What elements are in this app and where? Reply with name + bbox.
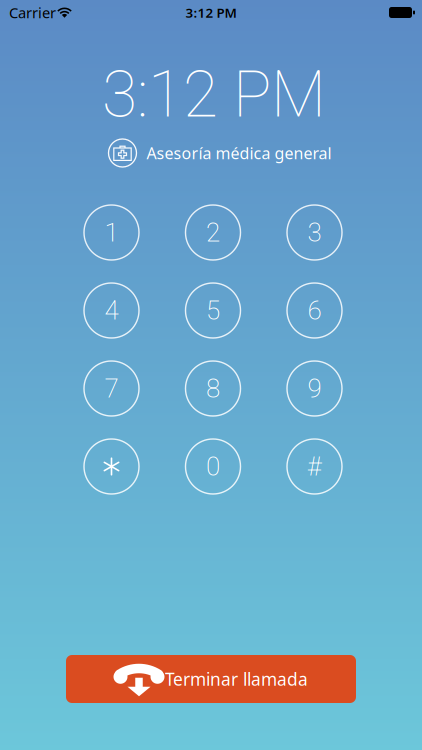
staticText: Carrier	[9, 3, 56, 22]
staticText: 3:12 PM	[185, 4, 236, 21]
button[interactable]: 0	[185, 439, 240, 494]
button[interactable]: 3	[287, 205, 342, 260]
staticText: #	[307, 451, 322, 482]
staticText: 3	[307, 217, 321, 248]
button[interactable]: 5	[185, 283, 240, 338]
staticText: 8	[206, 373, 220, 404]
button[interactable]: 2	[185, 205, 240, 260]
button[interactable]: 6	[287, 283, 342, 338]
staticText: 9	[307, 373, 321, 404]
staticText: 4	[104, 295, 118, 326]
button[interactable]: 4	[84, 283, 139, 338]
button[interactable]: 7	[84, 361, 139, 416]
staticText: 2	[206, 217, 220, 248]
button[interactable]: Pound	[287, 439, 342, 494]
staticText: 6	[307, 295, 321, 326]
button[interactable]: Asterisk	[84, 439, 139, 494]
staticText: 7	[104, 373, 118, 404]
button[interactable]: 8	[185, 361, 240, 416]
button[interactable]: Terminar llamada	[66, 655, 356, 703]
staticText: Asesoría médica general	[146, 142, 331, 164]
staticText: Terminar llamada	[165, 667, 308, 690]
staticText: 0	[206, 451, 220, 482]
staticText: 1	[104, 217, 118, 248]
staticText: 3:12 PM	[102, 57, 326, 132]
button[interactable]: 9	[287, 361, 342, 416]
staticText: 5	[206, 295, 220, 326]
button[interactable]: 1	[84, 205, 139, 260]
